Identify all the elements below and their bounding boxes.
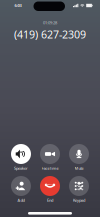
button[interactable]: FaceTime	[35, 144, 64, 171]
staticText: FaceTime	[41, 165, 58, 171]
staticText: Mute	[74, 165, 83, 171]
staticText: 6:03	[14, 3, 21, 8]
button[interactable]: Speaker	[6, 144, 35, 171]
staticText: Speaker	[14, 165, 28, 171]
staticText: Keypad	[73, 197, 85, 203]
button[interactable]: End	[35, 176, 64, 203]
button[interactable]: Keypad	[64, 176, 93, 203]
staticText: (419) 627-2309	[14, 27, 86, 41]
staticText: 01:09:28	[43, 20, 57, 25]
staticText: End	[47, 197, 53, 203]
button[interactable]: Add	[6, 176, 35, 203]
button[interactable]: Mute	[64, 144, 93, 171]
staticText: Add	[17, 197, 24, 203]
